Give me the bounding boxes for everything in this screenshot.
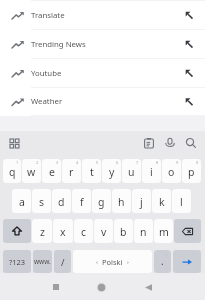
staticText: v (101, 225, 107, 239)
staticText: y (109, 165, 115, 179)
button[interactable]: a (12, 189, 31, 213)
staticText: 2 (36, 160, 39, 165)
staticText: d (58, 195, 65, 209)
staticText: / (61, 256, 65, 269)
button[interactable]: x (53, 219, 73, 243)
button[interactable]: Youtube (0, 59, 205, 88)
button[interactable]: m (154, 219, 173, 243)
button[interactable]: Weather (0, 88, 205, 116)
button[interactable]: ?123 (3, 250, 31, 273)
staticText: l (180, 195, 183, 209)
button[interactable]: i (142, 159, 161, 183)
staticText: w (27, 165, 36, 179)
staticText: ‹ (96, 258, 98, 266)
staticText: Youtube (31, 68, 62, 79)
staticText: 6 (116, 160, 119, 165)
staticText: u (128, 165, 135, 179)
staticText: 7 (136, 160, 139, 165)
staticText: j (140, 195, 143, 209)
staticText: Trending News (31, 39, 86, 50)
staticText: s (39, 195, 45, 209)
button[interactable]: s (32, 189, 51, 213)
staticText: f (80, 195, 84, 209)
button[interactable]: g (92, 189, 111, 213)
staticText: m (159, 225, 169, 239)
staticText: 3 (56, 160, 59, 165)
button[interactable]: z (32, 219, 52, 243)
button[interactable]: f (72, 189, 91, 213)
staticText: Translate (31, 10, 65, 21)
staticText: 5 (96, 160, 99, 165)
button[interactable]: h (112, 189, 131, 213)
staticText: Polski (102, 257, 123, 267)
staticText: › (127, 258, 129, 266)
staticText: a (19, 195, 25, 209)
staticText: b (120, 225, 127, 239)
button[interactable]: / (54, 250, 71, 273)
button[interactable]: Clipboard (138, 132, 159, 153)
button[interactable]: Back (139, 278, 157, 296)
button[interactable]: Backspace (174, 219, 201, 243)
button[interactable]: Apps (4, 133, 24, 153)
button[interactable]: k (152, 189, 171, 213)
staticText: h (118, 195, 125, 209)
button[interactable]: n (134, 219, 153, 243)
button[interactable]: Translate (0, 1, 205, 30)
button[interactable]: Period (154, 250, 171, 273)
button[interactable]: v (94, 219, 113, 243)
button[interactable]: w (22, 159, 41, 183)
staticText: 9 (176, 160, 179, 165)
button[interactable]: www. (33, 250, 52, 273)
button[interactable]: Home (92, 278, 110, 296)
staticText: 4 (76, 160, 79, 165)
staticText: k (159, 195, 165, 209)
staticText: q (9, 165, 16, 179)
button[interactable]: Enter (173, 250, 201, 273)
button[interactable]: q (3, 159, 21, 183)
staticText: e (49, 165, 55, 179)
staticText: x (60, 225, 66, 239)
button[interactable]: c (74, 219, 93, 243)
staticText: n (140, 225, 147, 239)
staticText: z (40, 225, 45, 239)
button[interactable]: b (114, 219, 133, 243)
staticText: i (150, 165, 153, 179)
staticText: ?123 (9, 257, 26, 267)
staticText: t (90, 165, 94, 179)
button[interactable]: Space (73, 250, 152, 273)
staticText: . (161, 254, 164, 268)
button[interactable]: r (62, 159, 81, 183)
staticText: o (168, 165, 175, 179)
button[interactable]: l (172, 189, 191, 213)
staticText: p (188, 165, 195, 179)
button[interactable]: Recents (47, 278, 65, 296)
button[interactable]: d (52, 189, 71, 213)
button[interactable]: Shift (3, 219, 31, 243)
button[interactable]: Search (180, 132, 201, 153)
staticText: , (166, 250, 168, 256)
button[interactable]: p (182, 159, 201, 183)
button[interactable]: o (162, 159, 181, 183)
button[interactable]: Trending News (0, 30, 205, 59)
button[interactable]: Voice input (159, 132, 180, 153)
staticText: 1 (16, 160, 19, 165)
button[interactable]: e (42, 159, 61, 183)
button[interactable]: j (132, 189, 151, 213)
staticText: www. (34, 257, 51, 266)
staticText: c (81, 225, 87, 239)
button[interactable]: y (102, 159, 121, 183)
staticText: 8 (156, 160, 159, 165)
button[interactable]: t (82, 159, 101, 183)
staticText: Weather (31, 96, 63, 107)
staticText: r (69, 165, 74, 179)
button[interactable]: u (122, 159, 141, 183)
staticText: g (98, 195, 105, 209)
staticText: 0 (196, 160, 199, 165)
